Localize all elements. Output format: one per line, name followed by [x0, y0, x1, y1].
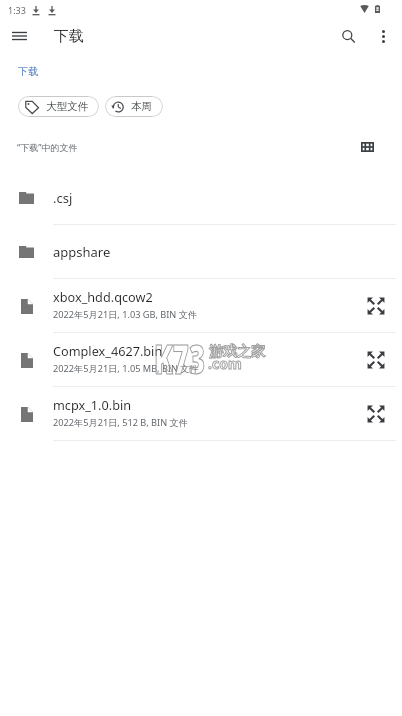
- staticText: “下载”中的文件: [17, 141, 78, 153]
- button[interactable]: xbox_hdd.qcow2: [0, 279, 402, 333]
- button[interactable]: mcpx_1.0.bin: [0, 387, 402, 441]
- button[interactable]: Navigation menu: [5, 22, 33, 50]
- staticText: 2022年5月21日, 1.05 MB, BIN 文件: [53, 362, 199, 375]
- staticText: mcpx_1.0.bin: [53, 396, 132, 413]
- staticText: Complex_4627.bin: [53, 342, 163, 359]
- staticText: 1:33: [8, 4, 26, 16]
- button[interactable]: 大型文件: [18, 96, 99, 117]
- staticText: 本周: [131, 100, 152, 113]
- staticText: K73: [154, 331, 205, 385]
- staticText: 2022年5月21日, 512 B, BIN 文件: [53, 416, 188, 429]
- button[interactable]: 本周: [105, 96, 163, 117]
- button[interactable]: Expand file: [362, 346, 390, 374]
- button[interactable]: Expand file: [362, 400, 390, 428]
- button[interactable]: 下载: [18, 65, 38, 78]
- staticText: appshare: [53, 243, 111, 261]
- button[interactable]: Expand file: [362, 292, 390, 320]
- staticText: .csj: [53, 189, 73, 207]
- staticText: 游戏之家: [209, 343, 265, 361]
- staticText: 下载: [54, 27, 84, 46]
- staticText: .com: [208, 354, 242, 373]
- button[interactable]: .csj: [0, 171, 402, 225]
- button[interactable]: appshare: [0, 225, 402, 279]
- button[interactable]: Complex_4627.bin: [0, 333, 402, 387]
- staticText: 大型文件: [46, 100, 88, 113]
- button[interactable]: Grid view: [355, 136, 379, 158]
- button[interactable]: Search: [334, 22, 362, 50]
- button[interactable]: More options: [369, 22, 397, 50]
- staticText: 2022年5月21日, 1.03 GB, BIN 文件: [53, 308, 198, 321]
- staticText: xbox_hdd.qcow2: [53, 288, 153, 305]
